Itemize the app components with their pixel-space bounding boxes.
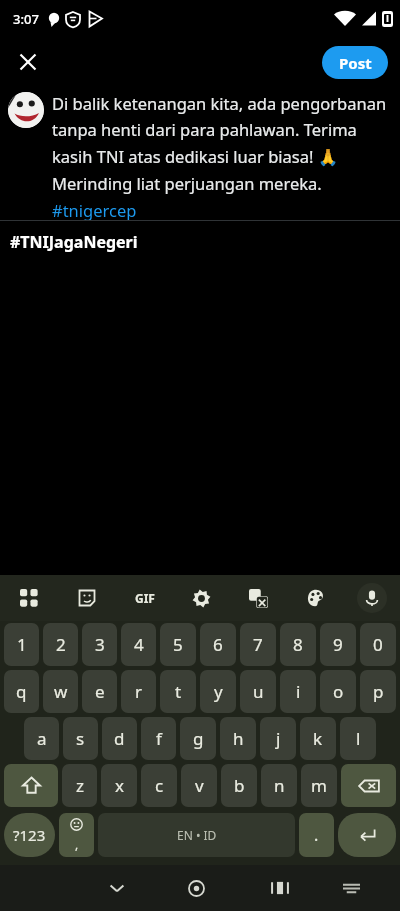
staticText: 2 [56,633,66,656]
staticText: 4 [134,633,144,656]
button[interactable]: Themes [287,575,344,621]
button[interactable]: Stickers [58,575,116,621]
button[interactable]: ?123 [4,813,55,857]
button[interactable]: d [102,717,137,760]
staticText: h [233,727,244,750]
button[interactable]: Voice input [344,575,400,621]
button[interactable]: b [221,764,257,807]
staticText: i [296,680,301,703]
button[interactable]: k [300,717,336,760]
button[interactable]: Change keyboard [320,865,382,911]
button[interactable]: z [62,764,97,807]
button[interactable]: e [82,670,117,713]
button[interactable]: 1 [4,623,39,666]
button[interactable]: r [121,670,156,713]
staticText: m [311,774,327,797]
button[interactable]: 5 [160,623,196,666]
button[interactable]: u [240,670,276,713]
button[interactable]: y [200,670,236,713]
staticText: . [314,824,319,846]
button[interactable]: Backspace [341,764,396,807]
staticText: 9 [333,633,343,656]
button[interactable]: n [261,764,297,807]
button[interactable]: Recent apps [240,865,320,911]
button[interactable]: Shift [4,764,58,807]
staticText: y [214,680,223,703]
button[interactable]: Settings [173,575,230,621]
staticText: 6 [213,633,223,656]
staticText: b [234,774,245,797]
button[interactable]: Close [8,42,48,82]
button[interactable]: g [180,717,216,760]
button[interactable]: Profile picture [8,92,44,128]
button[interactable]: 4 [121,623,156,666]
staticText: c [155,774,164,797]
button[interactable]: . [299,813,334,857]
button[interactable]: q [4,670,39,713]
staticText: f [156,727,162,750]
staticText: #TNIJagaNegeri [10,231,138,253]
button[interactable]: Space [98,813,295,857]
button[interactable]: Home [153,865,240,911]
button[interactable]: p [360,670,396,713]
staticText: s [76,727,85,750]
button[interactable]: Post [322,46,388,79]
button[interactable]: 2 [43,623,78,666]
button[interactable]: Apps [0,575,58,621]
button[interactable]: w [43,670,78,713]
staticText: GIF [135,590,155,606]
button[interactable]: l [340,717,376,760]
button[interactable]: 9 [320,623,356,666]
staticText: p [373,680,384,703]
staticText: 1 [17,633,27,656]
staticText: r [135,680,143,703]
button[interactable]: Translate [230,575,287,621]
staticText: Post [339,53,372,73]
staticText: e [95,680,105,703]
staticText: k [313,727,323,750]
staticText: ?123 [13,825,46,845]
button[interactable]: Back [80,865,153,911]
button[interactable]: s [63,717,98,760]
button[interactable]: 0 [360,623,396,666]
button[interactable]: c [141,764,177,807]
staticText: o [333,680,344,703]
staticText: x [115,774,124,797]
staticText: u [253,680,264,703]
button[interactable]: 3 [82,623,117,666]
staticText: EN • ID [177,827,217,843]
staticText: z [76,774,84,797]
button[interactable]: 7 [240,623,276,666]
staticText: 3:07 [13,10,39,28]
button[interactable]: f [141,717,176,760]
staticText: v [195,774,204,797]
button[interactable]: j [260,717,296,760]
staticText: Di balik ketenangan kita, ada pengorbana… [52,92,390,220]
button[interactable]: Enter [338,813,396,857]
button[interactable]: GIF [116,575,173,621]
staticText: w [54,680,68,703]
staticText: 5 [173,633,183,656]
staticText: a [37,727,47,750]
staticText: 3 [95,633,105,656]
button[interactable]: Di balik ketenangan kita, ada pengorbana… [52,92,390,220]
staticText: l [356,727,361,750]
staticText: , [75,836,79,852]
staticText: n [274,774,285,797]
button[interactable]: m [301,764,337,807]
button[interactable]: t [160,670,196,713]
button[interactable]: 6 [200,623,236,666]
staticText: q [16,680,27,703]
staticText: t [175,680,182,703]
staticText: d [114,727,125,750]
button[interactable]: h [220,717,256,760]
button[interactable]: v [181,764,217,807]
button[interactable]: x [101,764,137,807]
button[interactable]: Emoji [59,813,94,857]
staticText: 7 [253,633,263,656]
staticText: 0 [373,633,383,656]
button[interactable]: i [280,670,316,713]
button[interactable]: 8 [280,623,316,666]
button[interactable]: a [24,717,59,760]
button[interactable]: o [320,670,356,713]
